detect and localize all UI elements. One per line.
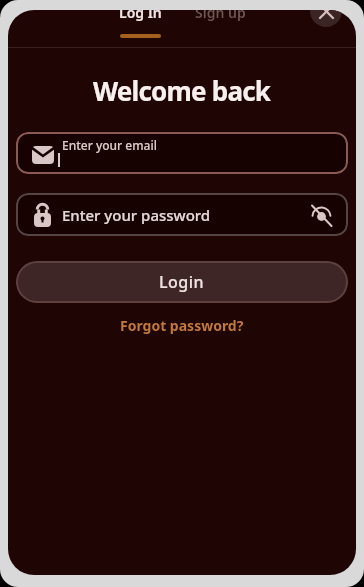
staticText: Log In (119, 10, 162, 22)
button[interactable]: Sign up (195, 10, 246, 22)
button[interactable]: Login (16, 261, 348, 303)
button[interactable]: Log In (119, 10, 162, 22)
staticText: Enter your password (62, 205, 211, 225)
button[interactable] (309, 203, 333, 227)
button[interactable] (310, 10, 342, 27)
button[interactable]: Enter your password (16, 193, 348, 236)
button[interactable]: Enter your email (16, 132, 348, 174)
staticText: Forgot password? (120, 316, 244, 335)
staticText: Login (159, 271, 205, 293)
staticText: Welcome back (93, 73, 271, 108)
button[interactable]: Forgot password? (120, 316, 244, 335)
staticText: Sign up (195, 10, 246, 22)
staticText: Enter your email (62, 137, 157, 153)
